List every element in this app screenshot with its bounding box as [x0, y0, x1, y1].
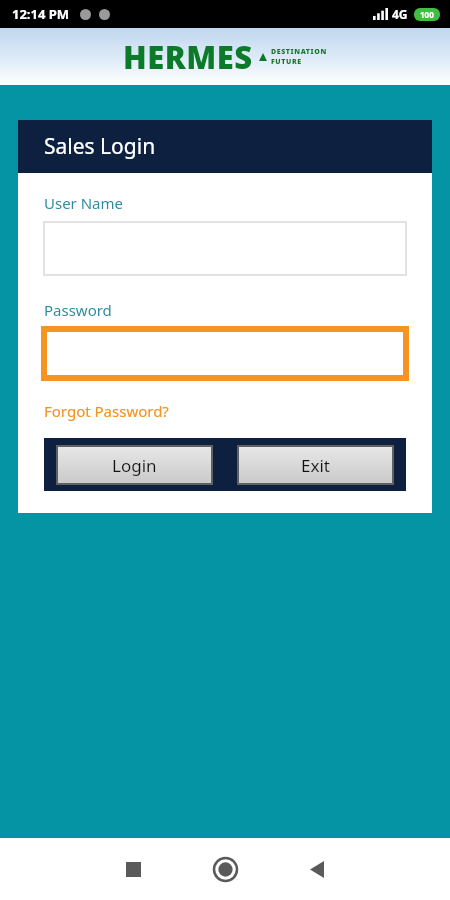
staticText: DESTINATION [271, 47, 327, 57]
button[interactable]: Back [289, 841, 345, 897]
button[interactable]: Forgot Password? [44, 401, 169, 421]
button[interactable]: Home [197, 841, 253, 897]
staticText: 100 [420, 9, 434, 20]
button[interactable]: Exit [238, 446, 393, 484]
button[interactable]: Recent apps [105, 841, 161, 897]
staticText: Exit [301, 454, 330, 477]
staticText: Password [44, 300, 112, 320]
button[interactable] [44, 329, 406, 378]
staticText: Login [112, 454, 157, 477]
staticText: Sales Login [44, 132, 156, 161]
staticText: User Name [44, 193, 124, 213]
staticText: Forgot Password? [44, 401, 169, 421]
staticText: 4G [392, 6, 408, 22]
staticText: FUTURE [271, 57, 302, 67]
staticText: HERMES [123, 36, 253, 78]
staticText: 12:14 PM [12, 5, 70, 23]
button[interactable]: Login [57, 446, 212, 484]
button[interactable] [44, 222, 406, 275]
